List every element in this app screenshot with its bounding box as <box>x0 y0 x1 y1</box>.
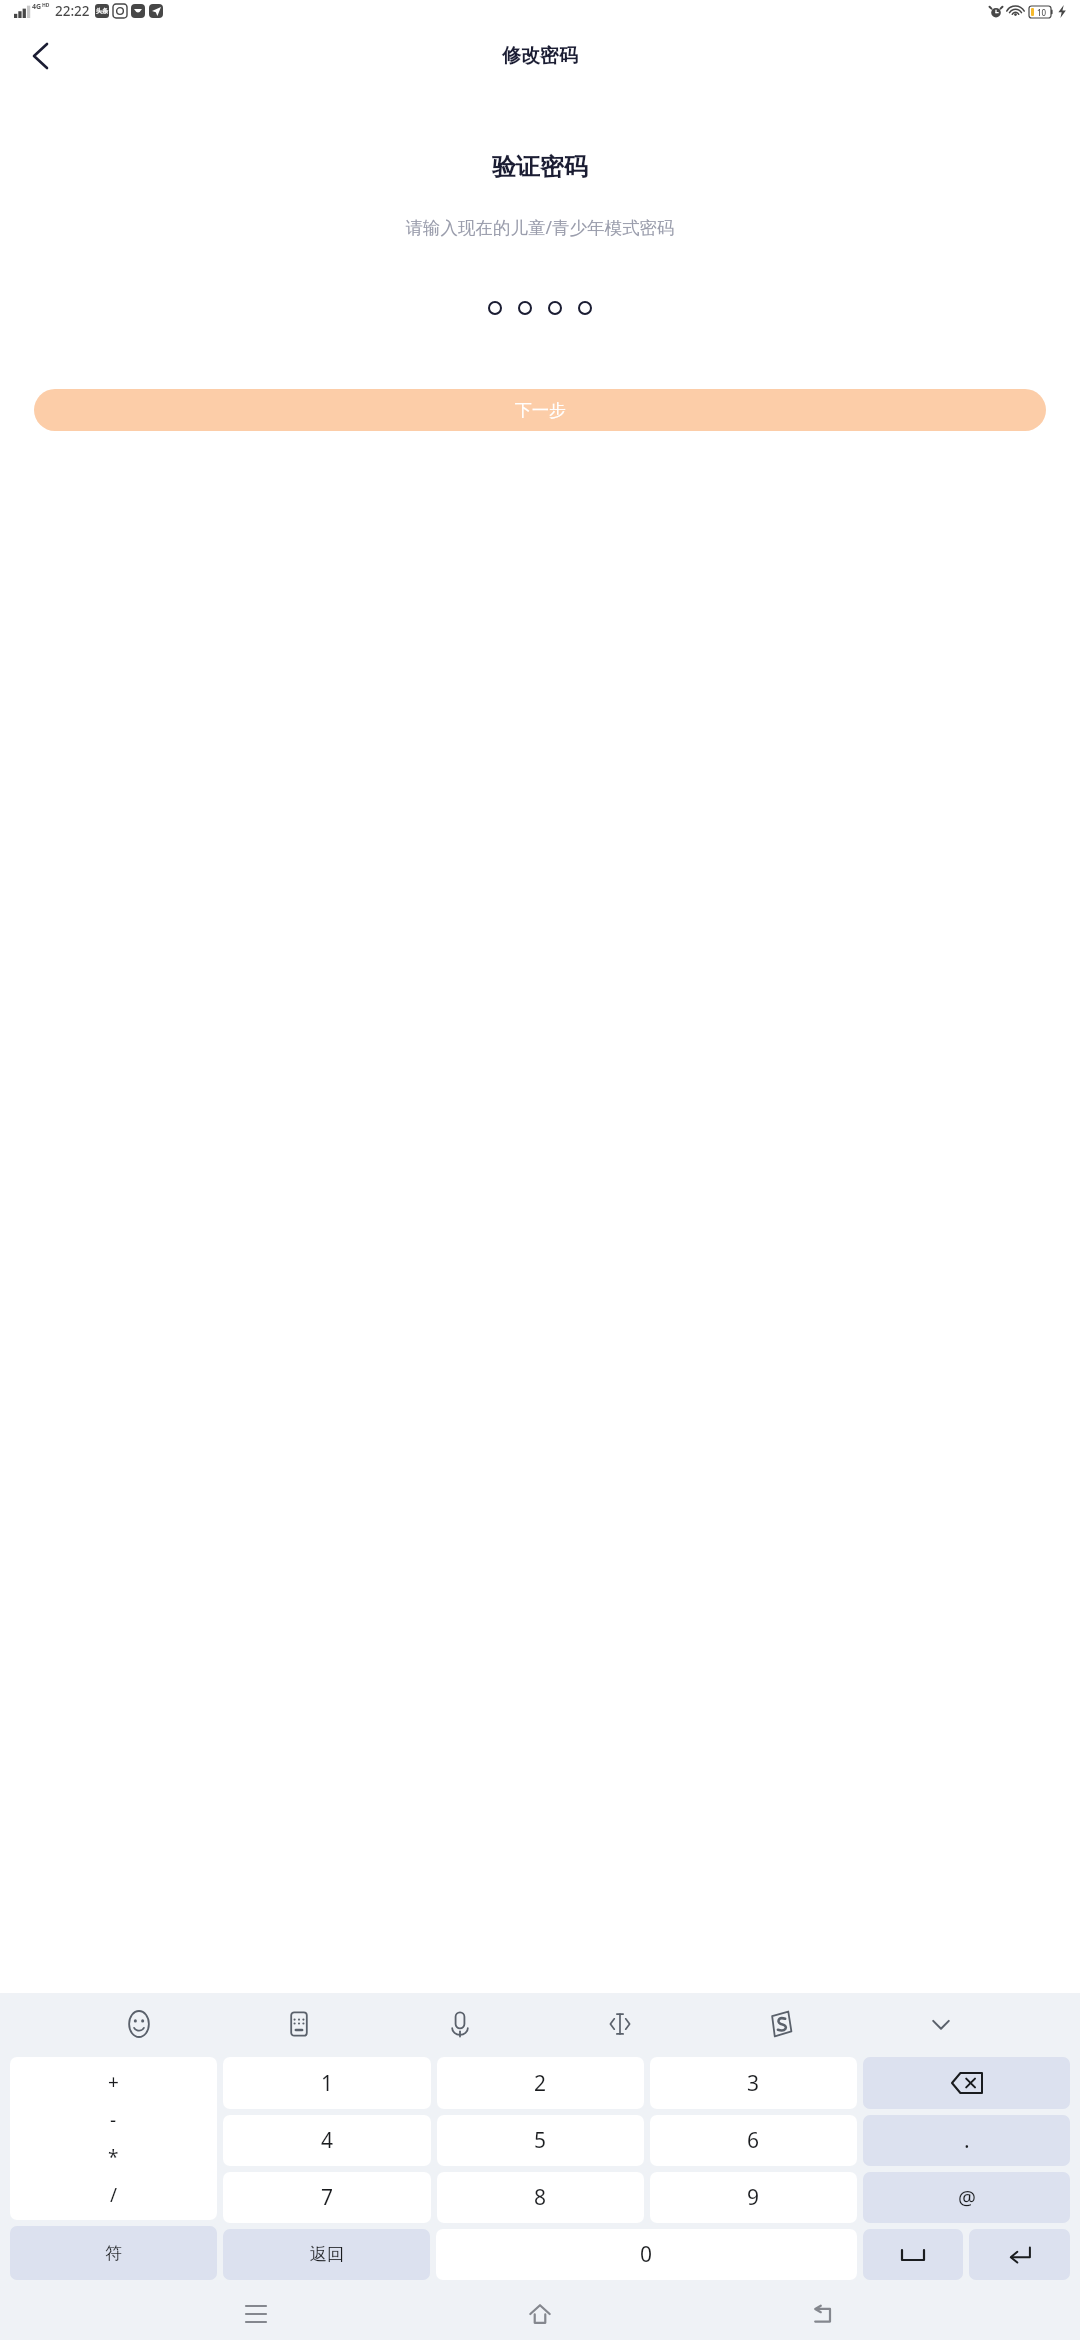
staticText: 6 <box>747 2126 760 2155</box>
staticText: 验证密码 <box>0 152 1080 182</box>
staticText: + <box>108 2069 119 2095</box>
button[interactable]: Back <box>16 32 64 80</box>
button[interactable]: 9 <box>650 2172 857 2223</box>
button[interactable]: . <box>863 2115 1070 2166</box>
staticText: 22:22 <box>55 2 90 20</box>
button[interactable]: Recents <box>228 2288 284 2340</box>
staticText: 4 <box>321 2126 334 2155</box>
button[interactable]: 4 <box>223 2115 431 2166</box>
button[interactable]: Sogou settings <box>759 2002 803 2046</box>
button[interactable]: Enter <box>969 2229 1070 2280</box>
button[interactable]: + <box>10 2057 217 2220</box>
staticText: 9 <box>747 2183 760 2212</box>
button[interactable]: 8 <box>437 2172 644 2223</box>
button[interactable]: 5 <box>437 2115 644 2166</box>
staticText: 3 <box>747 2069 760 2098</box>
button[interactable]: Keyboard layout <box>277 2002 321 2046</box>
button[interactable]: Back <box>796 2288 852 2340</box>
staticText: 符 <box>105 2243 122 2264</box>
button[interactable]: 符 <box>10 2226 217 2280</box>
staticText: 请输入现在的儿童/青少年模式密码 <box>0 215 1080 239</box>
staticText: 5 <box>534 2126 547 2155</box>
staticText: 1 <box>321 2069 334 2098</box>
staticText: - <box>110 2107 117 2133</box>
staticText: 下一步 <box>515 400 566 421</box>
staticText: 7 <box>321 2183 334 2212</box>
button[interactable]: Voice input <box>438 2002 482 2046</box>
button[interactable]: 0 <box>436 2229 857 2280</box>
button[interactable]: Text cursor <box>598 2002 642 2046</box>
button[interactable]: Hide keyboard <box>919 2002 963 2046</box>
button[interactable]: 2 <box>437 2057 644 2109</box>
staticText: 0 <box>640 2240 653 2269</box>
button[interactable]: Home <box>512 2288 568 2340</box>
button[interactable]: Emoji <box>117 2002 161 2046</box>
button[interactable]: @ <box>863 2172 1070 2223</box>
button[interactable]: 3 <box>650 2057 857 2109</box>
staticText: 头条 <box>96 7 108 15</box>
staticText: 修改密码 <box>502 44 578 68</box>
button[interactable]: 1 <box>223 2057 431 2109</box>
staticText: / <box>110 2182 118 2208</box>
staticText: 2 <box>534 2069 547 2098</box>
staticText: 8 <box>534 2183 547 2212</box>
staticText: . <box>964 2126 970 2155</box>
button[interactable]: 下一步 <box>34 389 1046 431</box>
staticText: 返回 <box>310 2244 344 2265</box>
staticText: 4G <box>32 2 42 12</box>
staticText: 10 <box>1037 7 1047 18</box>
button[interactable]: Space <box>863 2229 963 2280</box>
staticText: @ <box>958 2184 976 2211</box>
button[interactable]: 6 <box>650 2115 857 2166</box>
button[interactable]: 7 <box>223 2172 431 2223</box>
button[interactable]: 返回 <box>223 2229 430 2280</box>
staticText: HD <box>42 2 50 9</box>
staticText: * <box>108 2144 119 2170</box>
button[interactable]: Backspace <box>863 2057 1070 2109</box>
